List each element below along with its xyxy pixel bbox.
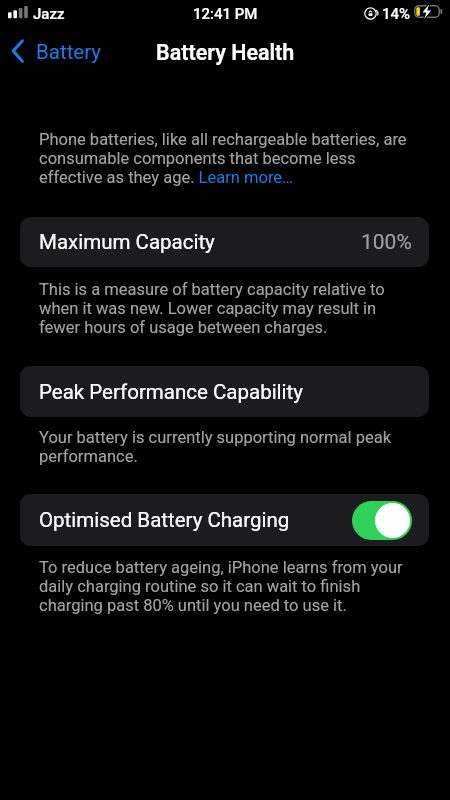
staticText: Battery Health xyxy=(156,40,295,65)
staticText: Your battery is currently supporting nor… xyxy=(39,428,414,466)
staticText: Phone batteries, like all rechargeable b… xyxy=(39,130,414,187)
button[interactable]: Peak Performance Capability xyxy=(20,366,429,417)
button[interactable]: Optimised Battery Charging, on xyxy=(352,501,412,540)
button[interactable]: Maximum Capacity xyxy=(20,217,429,267)
staticText: 14% xyxy=(382,5,411,23)
staticText: Peak Performance Capability xyxy=(39,380,303,404)
staticText: Battery xyxy=(36,40,102,64)
button[interactable]: Optimised Battery Charging xyxy=(20,494,429,546)
staticText: Maximum Capacity xyxy=(39,230,215,254)
staticText: 12:41 PM xyxy=(193,5,258,23)
other: Battery charging, 14 percent xyxy=(414,5,443,18)
staticText: To reduce battery ageing, iPhone learns … xyxy=(39,558,414,615)
staticText: 100% xyxy=(361,230,412,255)
other: Rotation lock xyxy=(364,7,377,20)
staticText: Optimised Battery Charging xyxy=(39,508,290,532)
button[interactable]: Battery xyxy=(8,34,102,68)
staticText: Jazz xyxy=(33,5,65,23)
staticText: This is a measure of battery capacity re… xyxy=(39,280,414,337)
other: Cellular signal strength xyxy=(8,6,28,19)
